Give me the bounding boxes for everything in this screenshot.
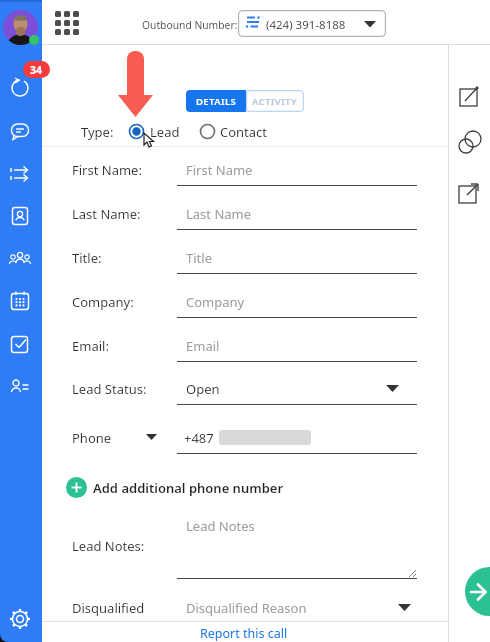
staticText: (424) 391-8188 [266, 17, 346, 33]
button[interactable] [9, 249, 31, 271]
button[interactable]: ACTIVITY [246, 90, 304, 112]
staticText: Phone [72, 429, 112, 447]
button[interactable] [10, 121, 30, 141]
staticText: Disqualified [72, 599, 145, 617]
staticText: Email: [72, 337, 109, 355]
staticText: Contact [220, 123, 268, 141]
staticText: Company [186, 293, 245, 311]
staticText: First Name [186, 161, 253, 179]
button[interactable] [10, 291, 30, 311]
staticText: Type: [81, 123, 114, 141]
button[interactable] [10, 334, 30, 354]
button[interactable] [9, 608, 31, 630]
button[interactable] [10, 206, 30, 226]
button[interactable] [10, 78, 30, 98]
staticText: Report this call [200, 625, 288, 642]
staticText: Email [186, 337, 220, 355]
staticText: Lead Notes [186, 517, 255, 535]
button[interactable] [10, 377, 30, 397]
staticText: First Name: [72, 161, 142, 179]
staticText: Last Name [186, 205, 252, 223]
button[interactable] [66, 477, 272, 498]
staticText: Last Name: [72, 205, 141, 223]
button[interactable] [3, 10, 38, 45]
staticText: ACTIVITY [252, 95, 298, 108]
staticText: Open [186, 380, 220, 398]
staticText: Outbound Number: [142, 18, 238, 32]
staticText: Lead [150, 123, 180, 141]
button[interactable] [199, 123, 216, 140]
staticText: +487 [184, 429, 214, 447]
button[interactable]: DETAILS [186, 90, 246, 112]
staticText: Title: [72, 249, 102, 267]
staticText: Lead Status: [72, 380, 147, 398]
staticText: 34 [30, 63, 43, 77]
button[interactable] [465, 567, 490, 616]
staticText: Lead Notes: [72, 537, 145, 555]
button[interactable] [10, 164, 30, 184]
button[interactable] [128, 123, 145, 140]
button[interactable]: (424) 391-8188 [238, 10, 386, 37]
staticText: Add additional phone number [93, 479, 284, 497]
button[interactable]: Report this call [200, 624, 295, 642]
staticText: Company: [72, 293, 134, 311]
staticText: Title [186, 249, 212, 267]
staticText: DETAILS [196, 95, 237, 108]
staticText: Disqualified Reason [186, 599, 307, 617]
